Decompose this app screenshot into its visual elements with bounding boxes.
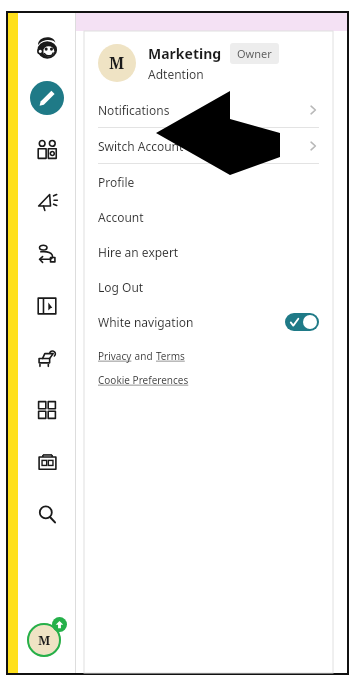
staticText: Privacy — [98, 349, 132, 363]
staticText: Adtention — [148, 66, 204, 82]
staticText: Account — [98, 209, 144, 225]
staticText: Terms — [156, 349, 185, 363]
staticText: Cookie Preferences — [98, 373, 189, 387]
button[interactable]: Privacy — [98, 349, 132, 363]
staticText: Profile — [98, 174, 135, 190]
button[interactable]: M — [98, 43, 319, 82]
staticText: Marketing — [148, 44, 222, 63]
button[interactable]: Content — [30, 341, 64, 375]
staticText: M — [109, 52, 125, 74]
staticText: M — [38, 631, 51, 649]
staticText: Log Out — [98, 279, 144, 295]
staticText: and — [132, 349, 156, 363]
button[interactable]: Mailchimp home — [30, 31, 64, 65]
button[interactable]: Hire an expert — [84, 234, 333, 269]
staticText: Switch Account — [98, 138, 184, 154]
button[interactable]: Integrations — [30, 393, 64, 427]
button[interactable]: Automations — [30, 237, 64, 271]
button[interactable]: Account — [27, 617, 67, 657]
staticText: Hire an expert — [98, 244, 179, 260]
button[interactable]: Switch Account — [84, 128, 333, 164]
button[interactable]: Search — [30, 497, 64, 531]
button[interactable]: Inbox — [30, 445, 64, 479]
button[interactable]: Profile — [84, 164, 333, 199]
staticText: Owner — [237, 46, 272, 61]
button[interactable]: Website — [30, 289, 64, 323]
button[interactable]: Campaigns — [30, 185, 64, 219]
button[interactable]: Log Out — [84, 269, 333, 304]
button[interactable]: Notifications — [84, 92, 333, 128]
button[interactable]: Terms — [156, 349, 185, 363]
button[interactable]: Cookie Preferences — [98, 373, 189, 387]
button[interactable]: Create — [30, 81, 64, 115]
staticText: Notifications — [98, 102, 170, 118]
button[interactable]: Audience — [30, 133, 64, 167]
button[interactable]: White navigation — [84, 304, 333, 339]
button[interactable]: Account — [84, 199, 333, 234]
staticText: White navigation — [98, 314, 194, 330]
